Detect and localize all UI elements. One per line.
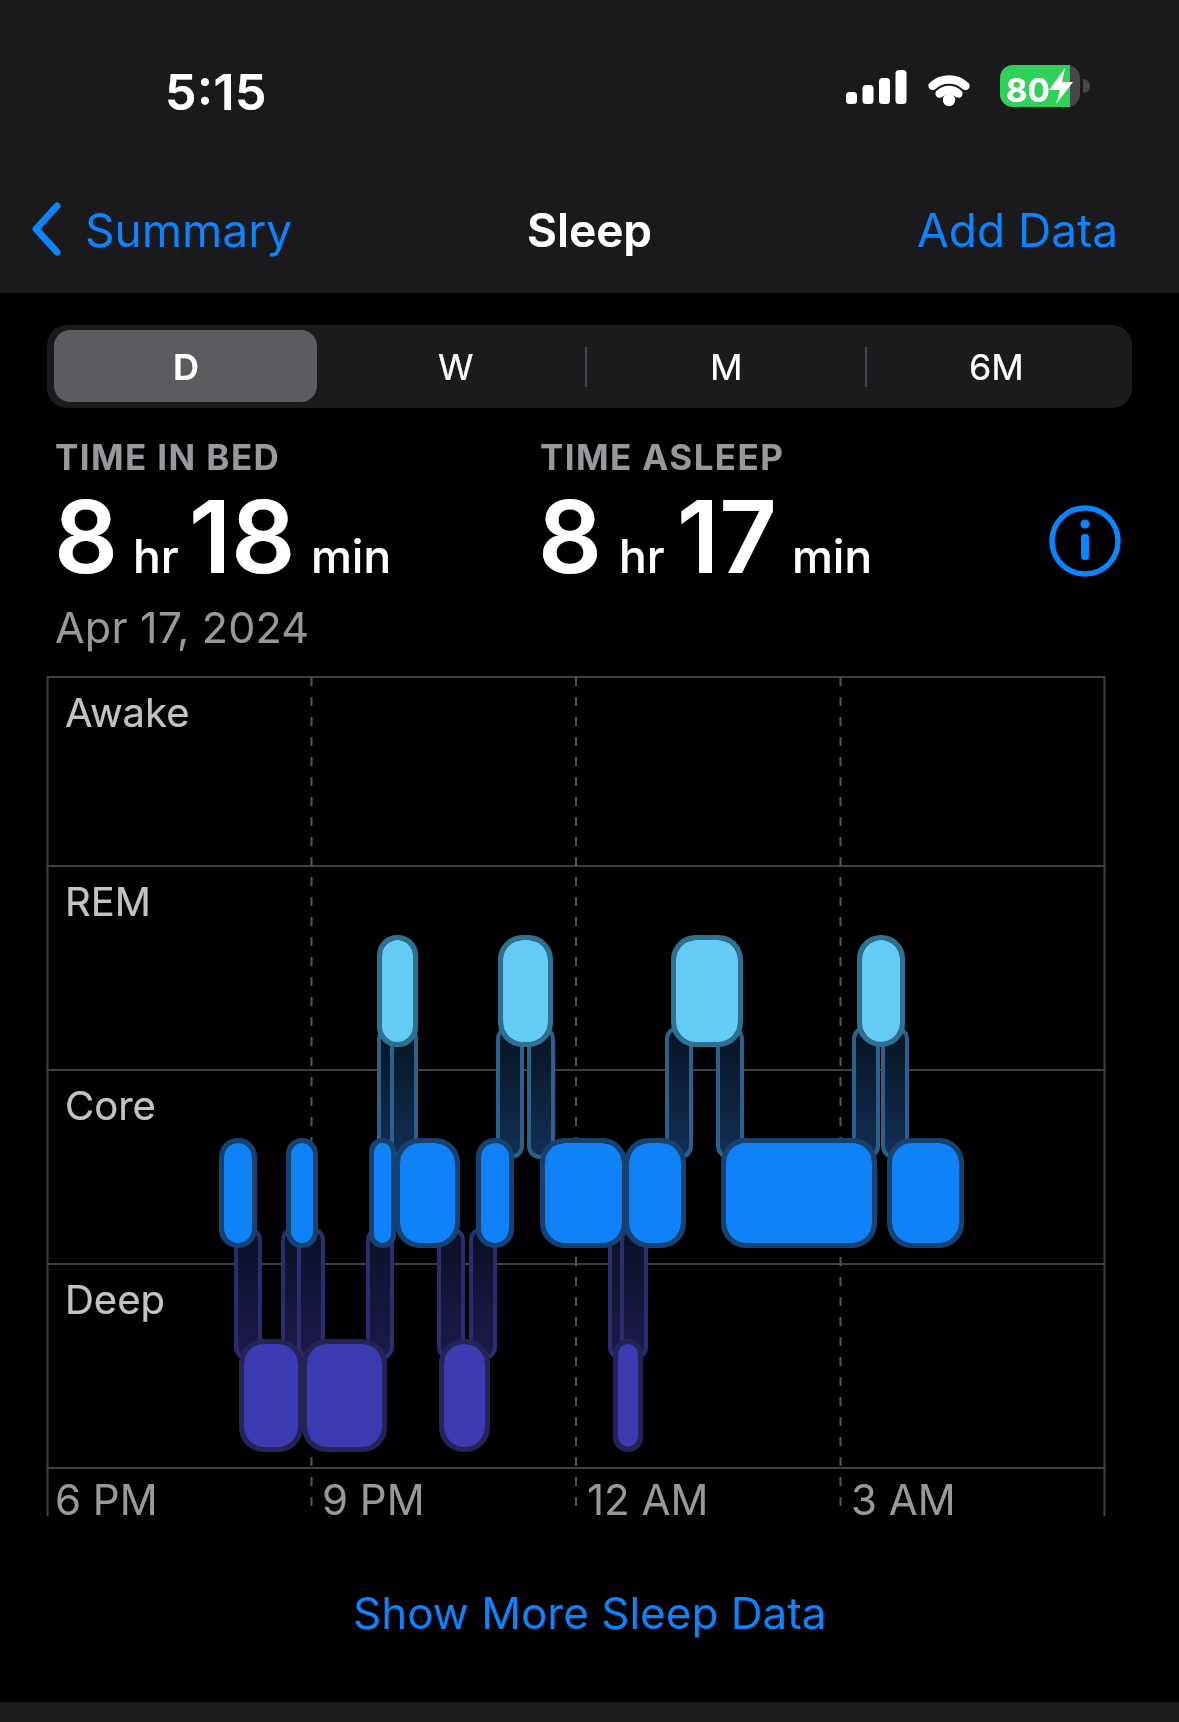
button[interactable]: W [366,336,546,398]
staticText: 8 [54,476,119,597]
button[interactable] [1048,504,1122,578]
staticText: 8 [538,476,603,597]
staticText: 17 [677,476,777,597]
staticText: min [311,528,392,584]
staticText: W [438,345,474,389]
button[interactable]: Add Data [905,196,1135,262]
staticText: D [173,345,199,389]
staticText: 12 AM [587,1474,709,1525]
button[interactable]: Summary [24,196,314,262]
staticText: Awake [65,688,190,736]
staticText: TIME ASLEEP [540,436,785,478]
staticText: 5:15 [165,62,267,122]
button[interactable]: D [96,336,276,398]
staticText: TIME IN BED [55,436,281,478]
button[interactable]: M [636,336,816,398]
staticText: min [792,528,873,584]
staticText: 6M [969,345,1024,389]
staticText: Apr 17, 2024 [55,601,310,653]
staticText: hr [133,528,179,584]
staticText: REM [65,877,151,925]
staticText: M [710,345,743,389]
staticText: 6 PM [55,1474,158,1525]
staticText: 18 [189,476,296,597]
staticText: 80 [1006,70,1050,110]
button[interactable]: 6M [906,336,1086,398]
button[interactable] [54,330,317,402]
staticText: Core [65,1081,156,1129]
staticText: hr [619,528,665,584]
staticText: Summary [85,202,293,258]
staticText: 3 AM [851,1474,956,1525]
staticText: 9 PM [322,1474,425,1525]
staticText: Add Data [917,202,1119,258]
staticText: Deep [65,1275,165,1323]
button[interactable]: Show More Sleep Data [353,1586,827,1639]
staticText: Sleep [527,202,653,258]
